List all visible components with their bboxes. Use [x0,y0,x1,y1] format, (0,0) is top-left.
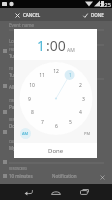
staticText: CANCEL [23,12,41,18]
staticText: :00 [46,36,66,55]
button[interactable]: DONE [77,10,112,20]
staticText: AM [22,131,29,136]
staticText: REPEAT [9,118,21,122]
staticText: 4 [79,109,82,116]
staticText: All-day [9,84,24,90]
staticText: AM [67,47,75,54]
staticText: My calendar [9,145,35,151]
button[interactable]: Done [40,144,72,158]
staticText: 9 [28,96,31,103]
staticText: 2 [79,82,82,89]
button[interactable]: AM [20,128,31,139]
staticText: FROM [9,48,19,52]
button[interactable]: Home [46,184,66,200]
staticText: 10 minutes [9,173,33,179]
staticText: Tue, Jan 12 [9,53,32,59]
staticText: Does not repeat [9,123,43,129]
button[interactable]: PM [82,128,93,139]
staticText: 3 [82,96,85,103]
staticText: 5 [69,119,72,126]
staticText: 2:00 AM [70,72,88,78]
staticText: 2:25 [100,1,111,8]
button[interactable]: Back [18,184,38,200]
staticText: TIME ZONE [9,99,26,103]
staticText: Event name [9,22,34,28]
button[interactable]: CANCEL [0,10,47,20]
button[interactable]: Recents [74,184,94,200]
staticText: 8 [31,109,34,116]
staticText: Tue, Jan 12 [9,72,32,78]
staticText: 11 [39,72,45,79]
staticText: REMINDERS [9,167,27,171]
staticText: Notification [52,173,77,179]
staticText: 7 [41,119,44,126]
staticText: TO [9,67,14,71]
staticText: Pacific Time [9,104,35,110]
staticText: 1 [69,72,72,79]
staticText: 10 [29,82,35,89]
staticText: Done [48,147,64,155]
staticText: CALENDAR [9,140,26,144]
staticText: 12 [53,68,59,75]
staticText: PM [84,131,91,136]
staticText: Location [9,38,28,44]
staticText: 1 [37,36,46,55]
staticText: 6 [55,123,58,130]
staticText: DONE [91,12,104,18]
